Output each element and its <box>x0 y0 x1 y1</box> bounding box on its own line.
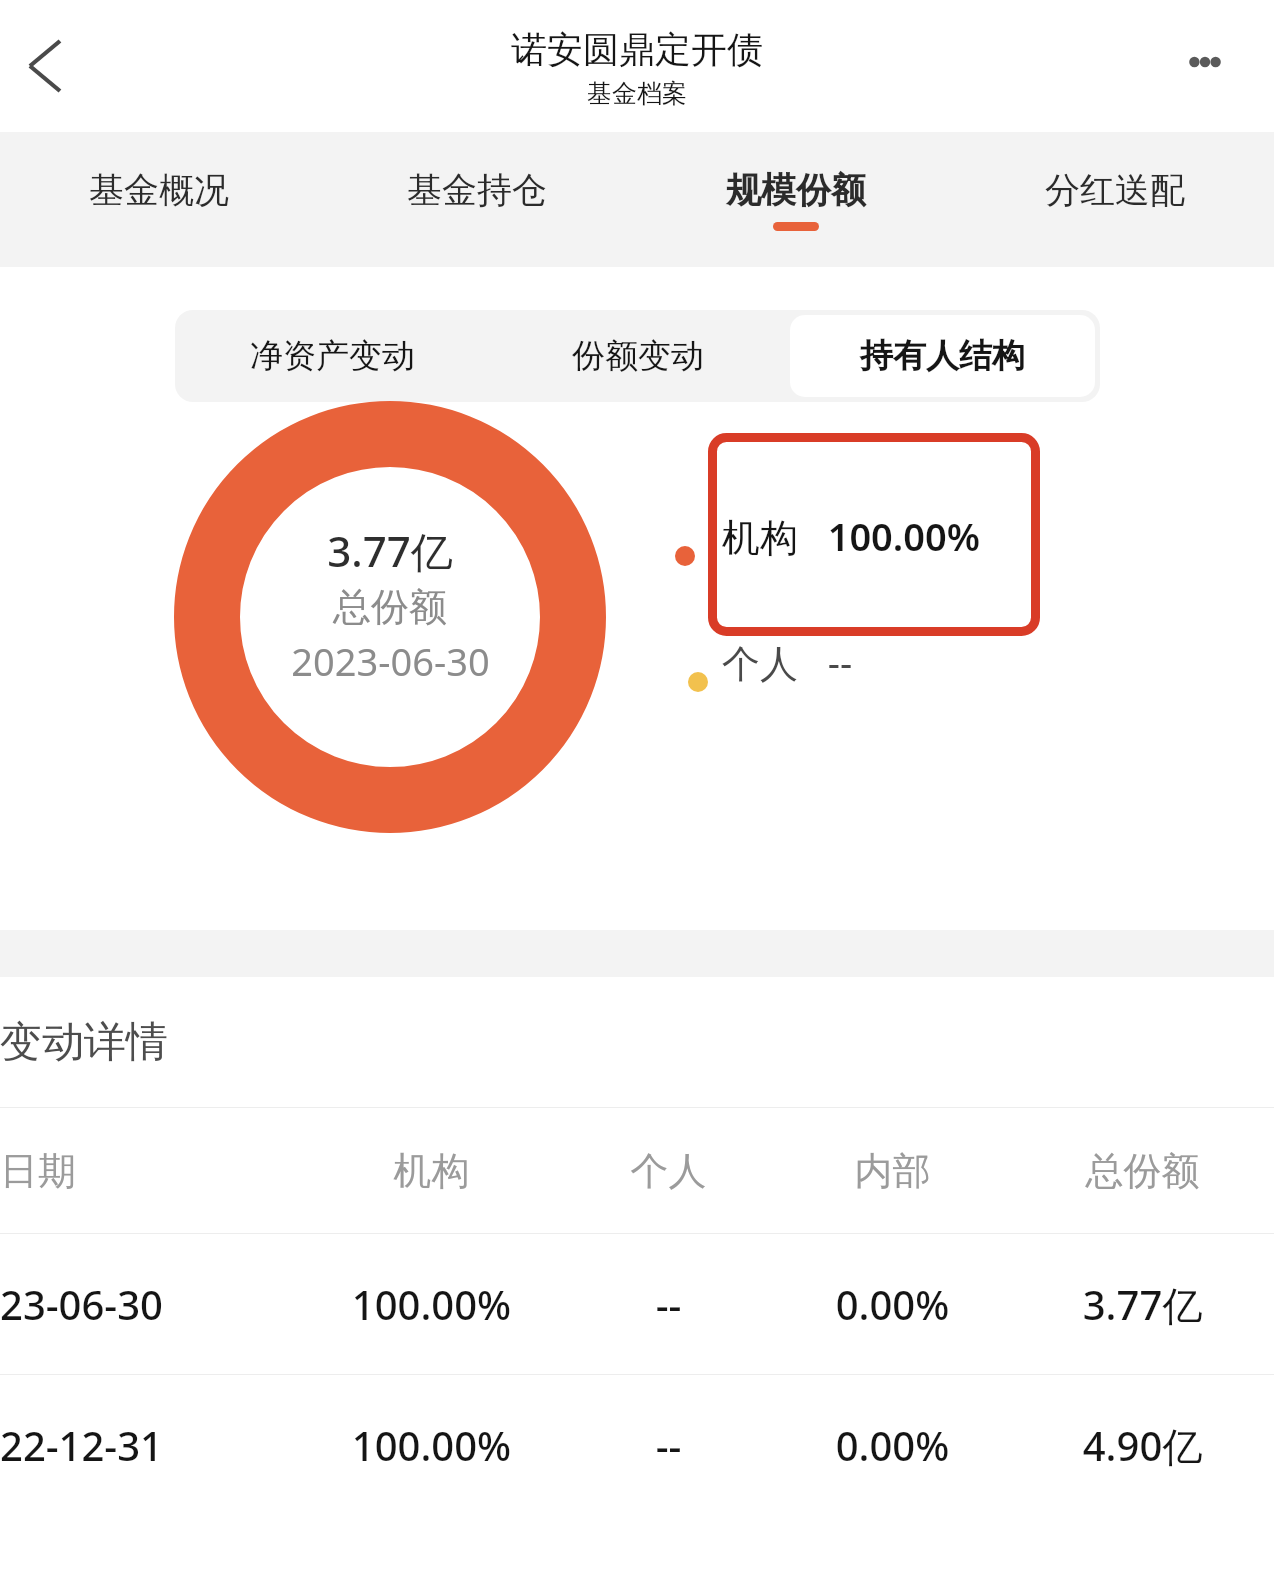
staticText: 基金持仓 <box>407 168 547 212</box>
staticText: -- <box>563 1418 774 1472</box>
button[interactable]: 分红送配 <box>955 132 1274 267</box>
button[interactable]: 净资产变动 <box>180 315 485 397</box>
staticText: 诺安圆鼎定开债 <box>511 27 763 72</box>
staticText: 总份额 <box>333 583 447 631</box>
staticText: 100.00% <box>300 1418 563 1472</box>
button[interactable]: More options <box>1166 36 1238 96</box>
button[interactable]: 份额变动 <box>485 315 790 397</box>
staticText: 个人 <box>563 1147 774 1195</box>
staticText: 2023-06-30 <box>291 635 490 687</box>
staticText: 22-12-31 <box>0 1418 300 1472</box>
staticText: 机构 100.00% <box>722 510 981 562</box>
staticText: 净资产变动 <box>250 335 415 377</box>
staticText: 基金概况 <box>89 168 229 212</box>
staticText: 机构 <box>300 1147 563 1195</box>
staticText: 变动详情 <box>0 1016 168 1069</box>
staticText: 个人 -- <box>722 636 853 688</box>
staticText: 规模份额 <box>726 168 866 212</box>
staticText: -- <box>563 1277 774 1331</box>
button[interactable]: 机构占比高亮 <box>708 433 1040 636</box>
button[interactable]: 基金概况 <box>0 132 318 267</box>
staticText: 总份额 <box>1011 1147 1274 1195</box>
staticText: 份额变动 <box>572 335 704 377</box>
button[interactable]: 基金持仓 <box>318 132 636 267</box>
staticText: 内部 <box>774 1147 1011 1195</box>
button[interactable]: 持有人结构 <box>790 315 1095 397</box>
staticText: 持有人结构 <box>860 335 1025 377</box>
staticText: 分红送配 <box>1045 168 1185 212</box>
staticText: 23-06-30 <box>0 1277 300 1331</box>
staticText: 基金档案 <box>587 78 687 109</box>
button[interactable]: 规模份额 <box>636 132 955 267</box>
button[interactable]: 22-12-31 <box>0 1375 1274 1515</box>
staticText: 3.77亿 <box>1011 1277 1274 1332</box>
button[interactable]: 23-06-30 <box>0 1234 1274 1374</box>
staticText: 日期 <box>0 1147 300 1195</box>
staticText: 100.00% <box>300 1277 563 1331</box>
staticText: 0.00% <box>774 1277 1011 1331</box>
staticText: 0.00% <box>774 1418 1011 1472</box>
staticText: 4.90亿 <box>1011 1418 1274 1473</box>
staticText: 3.77亿 <box>327 522 453 579</box>
button[interactable]: Back <box>8 33 74 99</box>
